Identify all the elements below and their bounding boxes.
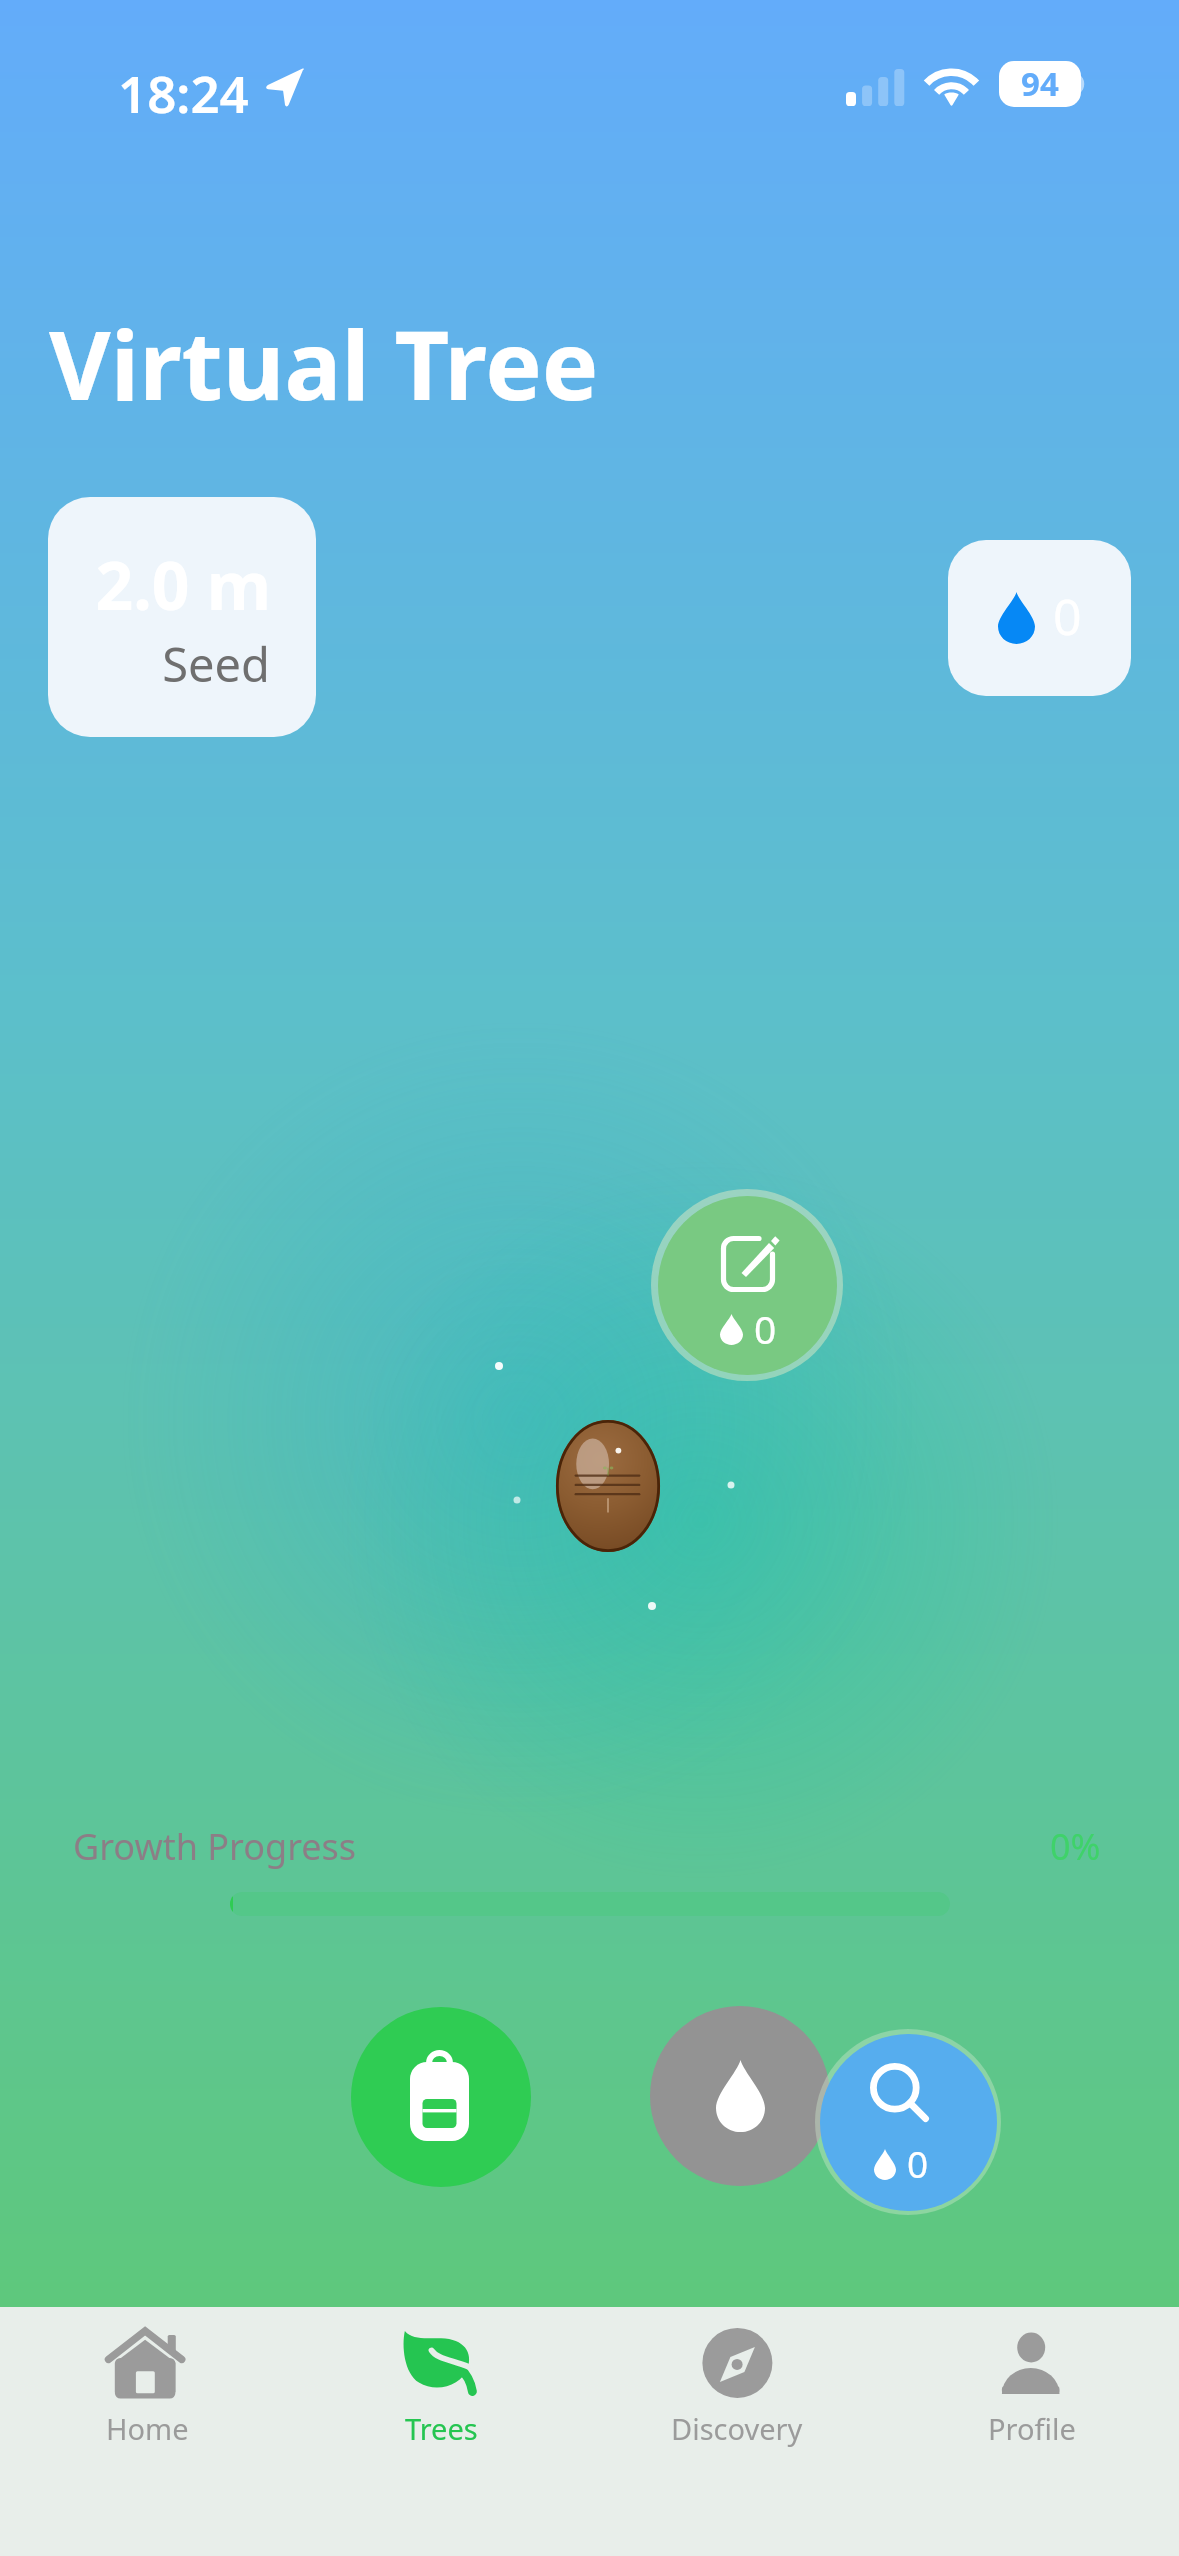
staticText: Profile [988,2409,1076,2448]
staticText: Growth Progress [73,1822,357,1871]
button[interactable]: Seed [556,1420,660,1552]
button[interactable]: Water [650,2006,830,2186]
staticText: 0 [754,1302,777,1355]
staticText: Trees [405,2409,478,2448]
staticText: 2.0 m [48,539,271,629]
button[interactable]: Profile [884,2307,1179,2448]
staticText: 18:24 [118,58,249,127]
button[interactable]: Home [0,2307,294,2448]
button[interactable]: Search [820,2034,997,2211]
button[interactable]: Backpack [351,2007,531,2187]
button[interactable]: 2.0 m [48,497,316,737]
staticText: Seed [48,632,270,696]
button[interactable]: Edit tree [658,1196,837,1375]
button[interactable]: 0 [948,540,1131,696]
staticText: 94 [1021,61,1059,106]
staticText: 0% [1050,1822,1101,1871]
staticText: Virtual Tree [49,298,599,427]
button[interactable]: Trees [294,2307,589,2448]
staticText: 0 [907,2138,929,2188]
staticText: 0 [1053,582,1082,650]
button[interactable]: Discovery [589,2307,884,2448]
staticText: Home [106,2409,189,2448]
staticText: Discovery [671,2409,803,2448]
